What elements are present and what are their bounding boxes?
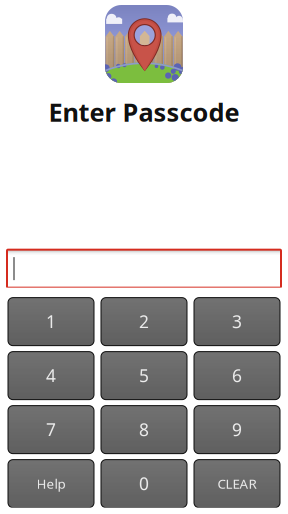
staticText: 3 — [232, 310, 242, 333]
button[interactable]: CLEAR — [194, 460, 280, 508]
button[interactable]: 6 — [194, 352, 280, 400]
button[interactable]: 8 — [101, 406, 187, 454]
staticText: 2 — [139, 310, 149, 333]
button[interactable]: 4 — [8, 352, 94, 400]
button[interactable]: 2 — [101, 298, 187, 346]
button[interactable]: 0 — [101, 460, 187, 508]
staticText: Enter Passcode — [48, 95, 239, 129]
button[interactable]: 5 — [101, 352, 187, 400]
staticText: 7 — [46, 418, 56, 441]
button[interactable]: 3 — [194, 298, 280, 346]
staticText: Help — [36, 475, 65, 492]
staticText: 4 — [46, 364, 56, 387]
button[interactable]: Help — [8, 460, 94, 508]
staticText: CLEAR — [217, 475, 256, 492]
button[interactable]: 9 — [194, 406, 280, 454]
button[interactable]: 1 — [8, 298, 94, 346]
staticText: 9 — [232, 418, 242, 441]
button[interactable]: 7 — [8, 406, 94, 454]
staticText: 5 — [139, 364, 149, 387]
staticText: 6 — [232, 364, 242, 387]
staticText: 8 — [139, 418, 149, 441]
staticText: 0 — [139, 472, 149, 495]
staticText: 1 — [46, 310, 56, 333]
